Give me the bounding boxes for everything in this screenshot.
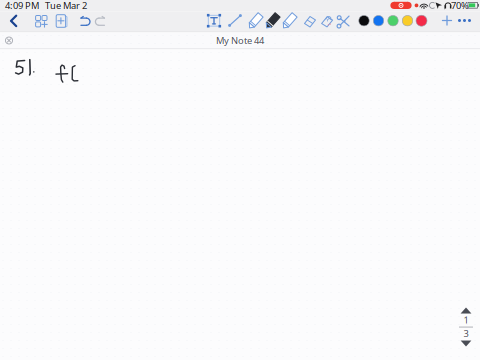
button[interactable]: Blue: [0, 11, 480, 31]
button[interactable]: Previous page: [0, 49, 480, 360]
staticText: 1: [463, 314, 468, 326]
button[interactable]: More options: [0, 11, 480, 31]
button[interactable]: Page templates: [0, 11, 480, 31]
button[interactable]: Text box: [0, 11, 480, 31]
staticText: 4:09 PM: [5, 0, 39, 12]
button[interactable]: Green: [0, 11, 480, 31]
button[interactable]: Add page: [0, 11, 480, 31]
button[interactable]: Undo: [0, 11, 480, 31]
button[interactable]: Pencil: [0, 11, 480, 31]
staticText: Tue Mar 2: [45, 0, 87, 12]
button[interactable]: Ruler: [0, 11, 480, 31]
button[interactable]: Pen: [0, 11, 480, 31]
button[interactable]: Next page: [0, 49, 480, 360]
button[interactable]: Red: [0, 11, 480, 31]
button[interactable]: Back: [0, 11, 480, 31]
button[interactable]: Yellow: [0, 11, 480, 31]
button[interactable]: Close note: [0, 32, 480, 48]
staticText: 70%: [451, 0, 469, 12]
button[interactable]: Add color: [0, 11, 480, 31]
button[interactable]: Black: [0, 11, 480, 31]
button[interactable]: Eraser: [0, 11, 480, 31]
staticText: 3: [463, 327, 468, 340]
button[interactable]: Cut: [0, 11, 480, 31]
staticText: My Note 44: [216, 34, 264, 47]
button[interactable]: Redo: [0, 11, 480, 31]
button[interactable]: Highlighter: [0, 11, 480, 31]
button[interactable]: Smudge: [0, 11, 480, 31]
